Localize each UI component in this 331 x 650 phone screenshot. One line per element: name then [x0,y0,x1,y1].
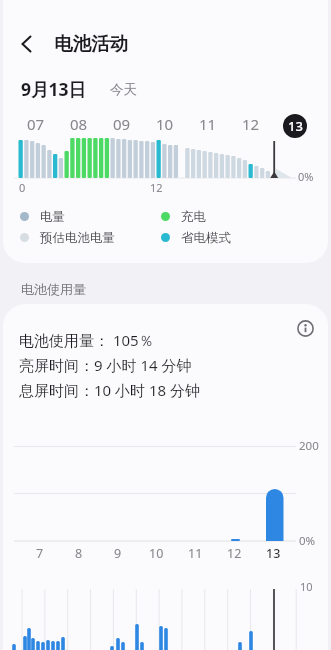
staticText: 200 [299,438,319,454]
staticText: 充电 [181,209,206,225]
staticText: 省电模式 [181,230,231,246]
staticText: 11 [188,545,203,562]
staticText: 亮屏时间：9 小时 14 分钟 [19,355,192,375]
staticText: 电池活动 [54,32,128,55]
staticText: 电池使用量 [21,281,86,297]
staticText: 9 [114,545,122,562]
staticText: 08 [70,114,88,134]
staticText: 10 [300,579,313,594]
staticText: 8 [75,545,83,562]
staticText: 12 [242,114,260,134]
staticText: 0 [19,180,26,195]
staticText: 13 [288,117,303,135]
staticText: 预估电池电量 [40,230,115,246]
staticText: 电池使用量： 105％ [19,330,154,350]
staticText: 9月13日 [21,77,87,101]
staticText: 13 [266,545,281,562]
staticText: 10 [149,545,164,562]
staticText: 07 [27,114,45,134]
staticText: 息屏时间：10 小时 18 分钟 [19,380,201,400]
staticText: 11 [199,114,217,134]
staticText: 7 [36,545,44,562]
staticText: 10 [156,114,174,134]
staticText: 12 [150,180,163,195]
staticText: 今天 [110,81,137,98]
staticText: 12 [227,545,242,562]
staticText: 0% [299,533,316,549]
staticText: 电量 [40,209,65,225]
staticText: 0% [298,169,314,184]
staticText: 09 [113,114,131,134]
